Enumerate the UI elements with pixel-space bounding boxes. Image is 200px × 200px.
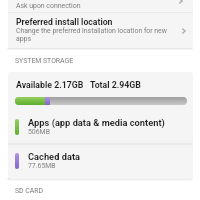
staticText: SD CARD xyxy=(15,187,44,195)
staticText: Available 2.17GB xyxy=(16,80,84,90)
staticText: 77.65MB xyxy=(28,162,56,170)
button[interactable]: Cached data xyxy=(8,145,193,176)
button[interactable]: Open preferred install location xyxy=(178,25,190,37)
staticText: 506MB xyxy=(28,128,50,136)
staticText: Preferred install location xyxy=(16,17,113,27)
staticText: SYSTEM STORAGE xyxy=(15,57,74,65)
staticText: Apps (app data & media content) xyxy=(28,117,165,128)
button[interactable]: Apps (app data & media content) xyxy=(8,111,193,142)
button[interactable]: Ask upon connection xyxy=(8,0,193,12)
staticText: Change the preferred installation locati… xyxy=(16,27,168,43)
button[interactable]: Preferred install location xyxy=(8,13,193,47)
staticText: Ask upon connection xyxy=(16,2,81,10)
staticText: Cached data xyxy=(28,151,81,162)
staticText: Total 2.94GB xyxy=(90,80,141,90)
